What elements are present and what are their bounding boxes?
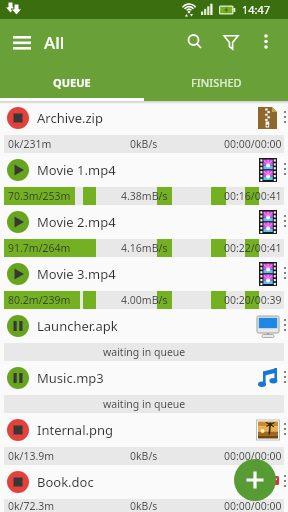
staticText: Launcher.apk bbox=[37, 317, 256, 335]
staticText: 91.7m/264m bbox=[8, 241, 71, 255]
staticText: 0kB/s bbox=[130, 449, 158, 463]
button[interactable]: Book.doc bbox=[0, 465, 288, 512]
staticText: 14:47 bbox=[242, 2, 271, 17]
staticText: Movie 2.mp4 bbox=[37, 213, 256, 231]
button[interactable]: Archive.zip bbox=[0, 101, 288, 153]
button[interactable]: FINISHED bbox=[144, 62, 288, 101]
staticText: 4.38mB/s bbox=[121, 189, 168, 203]
staticText: Music.mp3 bbox=[37, 369, 256, 387]
staticText: Movie 3.mp4 bbox=[37, 265, 256, 283]
button[interactable]: Internal.png bbox=[0, 413, 288, 465]
button[interactable]: Launcher.apk bbox=[0, 309, 288, 361]
button[interactable] bbox=[251, 27, 281, 57]
staticText: 70.3m/253m bbox=[8, 189, 71, 203]
staticText: 80.2m/239m bbox=[8, 293, 71, 307]
button[interactable] bbox=[178, 25, 212, 59]
staticText: 0k/231m bbox=[8, 137, 52, 151]
button[interactable]: Movie 3.mp4 bbox=[0, 257, 288, 309]
staticText: Movie 1.mp4 bbox=[37, 161, 256, 179]
button[interactable] bbox=[214, 25, 248, 59]
button[interactable]: Movie 1.mp4 bbox=[0, 153, 288, 205]
button[interactable]: QUEUE bbox=[0, 62, 144, 101]
staticText: 00:22/00:41 bbox=[224, 241, 282, 255]
staticText: 00:16/00:41 bbox=[224, 189, 282, 203]
staticText: 0k/13.9m bbox=[8, 449, 55, 463]
button[interactable]: Music.mp3 bbox=[0, 361, 288, 413]
staticText: 00:20/00:39 bbox=[224, 293, 282, 307]
staticText: All bbox=[44, 31, 65, 54]
button[interactable] bbox=[234, 459, 276, 501]
staticText: 4.16mB/s bbox=[121, 241, 168, 255]
staticText: FINISHED bbox=[191, 75, 242, 90]
staticText: Archive.zip bbox=[37, 109, 256, 127]
staticText: waiting in queue bbox=[103, 397, 186, 411]
staticText: 00:00/00:00 bbox=[224, 449, 282, 463]
button[interactable]: Movie 2.mp4 bbox=[0, 205, 288, 257]
staticText: waiting in queue bbox=[103, 345, 186, 359]
staticText: Book.doc bbox=[37, 473, 256, 491]
staticText: Internal.png bbox=[37, 421, 256, 439]
staticText: 0kB/s bbox=[130, 137, 158, 151]
staticText: QUEUE bbox=[53, 75, 91, 90]
staticText: 0k/72.3m bbox=[8, 499, 55, 512]
staticText: 00:00/00:00 bbox=[224, 137, 282, 151]
button[interactable] bbox=[7, 28, 37, 58]
staticText: 00:00/00:00 bbox=[224, 499, 282, 512]
staticText: 4.00mB/s bbox=[121, 293, 168, 307]
staticText: 0kB/s bbox=[130, 499, 158, 512]
